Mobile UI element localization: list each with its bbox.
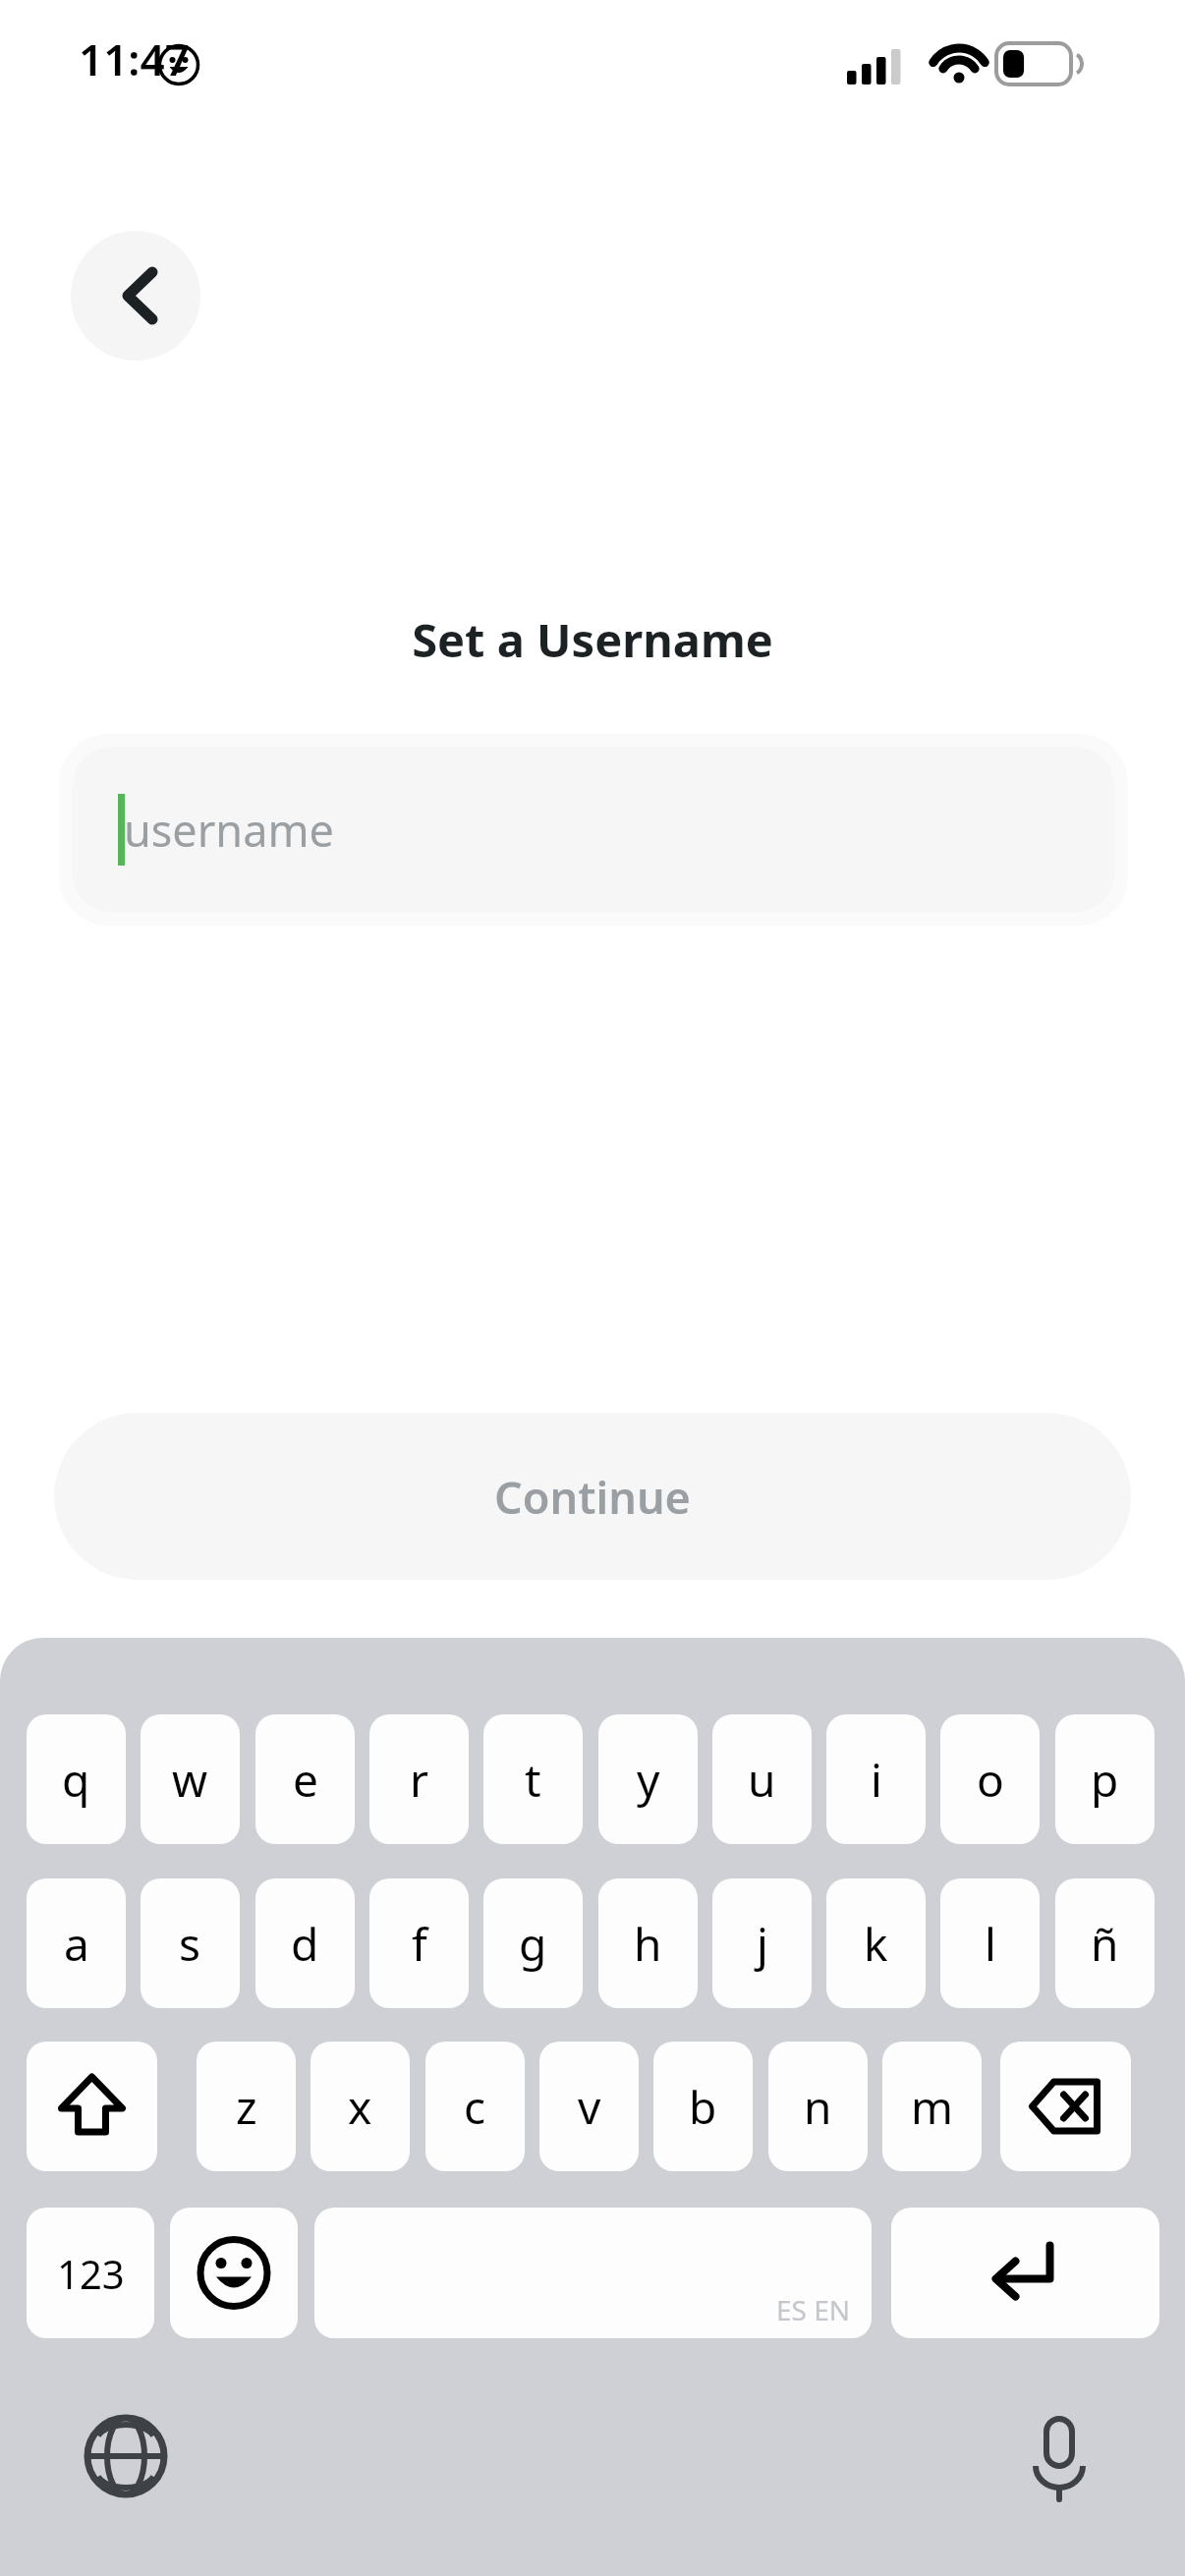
button[interactable]: Space [314, 2208, 872, 2338]
button[interactable]: Change language [67, 2397, 185, 2515]
staticText: u [748, 1749, 776, 1811]
staticText: v [578, 2076, 601, 2138]
staticText: 11:47 [79, 29, 190, 88]
button[interactable]: 123 [27, 2208, 154, 2338]
staticText: t [525, 1749, 541, 1811]
button[interactable]: l [940, 1878, 1040, 2008]
staticText: y [637, 1749, 660, 1811]
staticText: x [348, 2076, 372, 2138]
staticText: Continue [494, 1467, 691, 1527]
button[interactable]: z [197, 2042, 296, 2171]
staticText: n [804, 2076, 832, 2138]
button[interactable]: Backspace [1000, 2042, 1131, 2171]
button[interactable]: username [59, 734, 1128, 925]
staticText: i [871, 1749, 882, 1811]
staticText: b [689, 2076, 717, 2138]
staticText: s [179, 1913, 201, 1975]
button[interactable]: s [141, 1878, 240, 2008]
button[interactable]: a [27, 1878, 126, 2008]
button[interactable]: j [712, 1878, 812, 2008]
button[interactable]: b [653, 2042, 753, 2171]
button[interactable]: o [940, 1714, 1040, 1844]
staticText: m [911, 2076, 954, 2138]
button[interactable]: w [141, 1714, 240, 1844]
button[interactable]: f [369, 1878, 469, 2008]
staticText: ES EN [776, 2291, 851, 2328]
staticText: j [757, 1913, 768, 1975]
button[interactable]: Emoji [170, 2208, 298, 2338]
staticText: p [1091, 1749, 1119, 1811]
staticText: r [410, 1749, 428, 1811]
staticText: z [236, 2076, 257, 2138]
button[interactable]: Continue [54, 1413, 1131, 1580]
staticText: d [291, 1913, 319, 1975]
button[interactable]: g [483, 1878, 583, 2008]
button[interactable]: v [539, 2042, 639, 2171]
staticText: o [977, 1749, 1004, 1811]
staticText: h [634, 1913, 662, 1975]
staticText: l [985, 1913, 996, 1975]
staticText: k [864, 1913, 888, 1975]
staticText: g [519, 1913, 547, 1975]
button[interactable]: ñ [1055, 1878, 1155, 2008]
staticText: a [64, 1913, 89, 1975]
button[interactable]: n [768, 2042, 868, 2171]
button[interactable]: c [425, 2042, 525, 2171]
staticText: c [464, 2076, 486, 2138]
button[interactable]: i [826, 1714, 926, 1844]
button[interactable]: Return [891, 2208, 1159, 2338]
button[interactable]: t [483, 1714, 583, 1844]
staticText: q [62, 1749, 90, 1811]
button[interactable]: q [27, 1714, 126, 1844]
staticText: e [293, 1749, 318, 1811]
button[interactable]: e [255, 1714, 355, 1844]
button[interactable]: y [598, 1714, 698, 1844]
button[interactable]: h [598, 1878, 698, 2008]
button[interactable]: x [310, 2042, 410, 2171]
button[interactable]: Shift [27, 2042, 157, 2171]
button[interactable]: u [712, 1714, 812, 1844]
button[interactable]: Back [71, 231, 200, 361]
button[interactable]: d [255, 1878, 355, 2008]
staticText: f [412, 1913, 427, 1975]
staticText: Set a Username [412, 608, 773, 671]
button[interactable]: m [882, 2042, 982, 2171]
staticText: w [172, 1749, 208, 1811]
staticText: ñ [1091, 1913, 1119, 1975]
staticText: 123 [57, 2247, 125, 2300]
button[interactable]: p [1055, 1714, 1155, 1844]
button[interactable]: Voice input [1000, 2397, 1118, 2515]
staticText: username [124, 800, 334, 860]
button[interactable]: r [369, 1714, 469, 1844]
button[interactable]: k [826, 1878, 926, 2008]
